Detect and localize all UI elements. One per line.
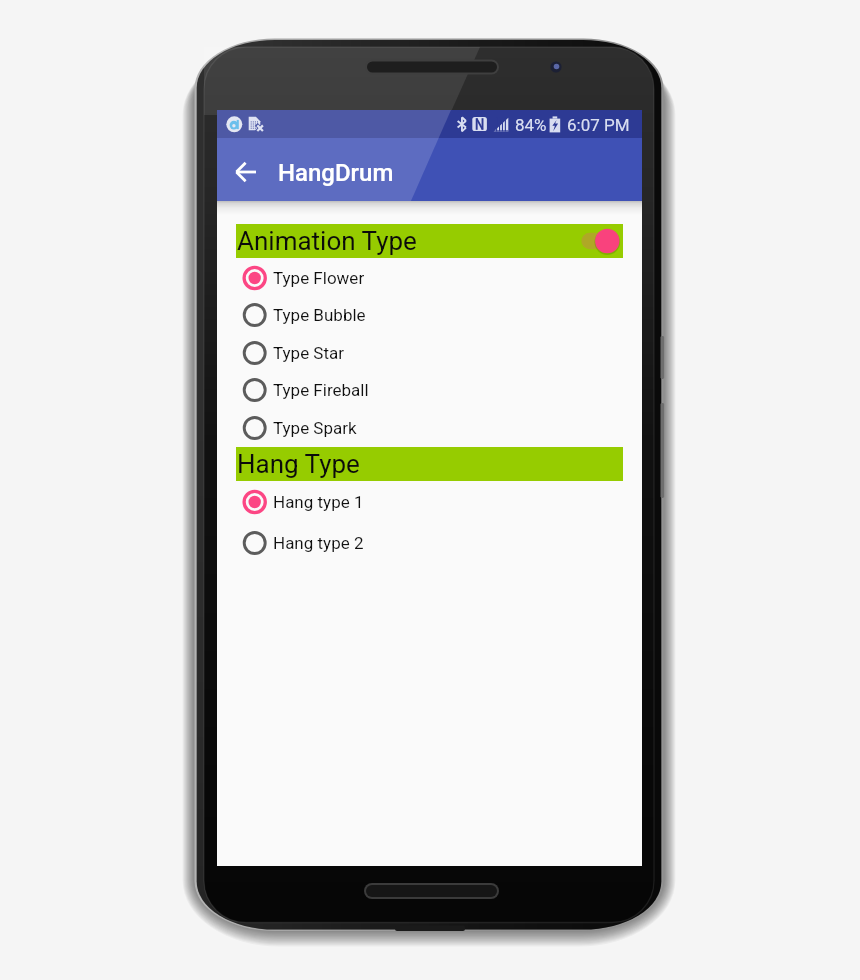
staticText: Hang Type (237, 449, 360, 479)
staticText: Animation Type (237, 226, 417, 256)
button[interactable]: Hang type 2 (217, 524, 642, 561)
staticText: Type Flower (273, 268, 365, 288)
staticText: Type Fireball (273, 380, 369, 400)
button[interactable]: Type Flower (217, 259, 642, 296)
button[interactable]: Type Star (217, 334, 642, 371)
staticText: Type Spark (273, 418, 357, 438)
staticText: Hang type 2 (273, 533, 364, 553)
button[interactable]: Type Bubble (217, 296, 642, 333)
staticText: HangDrum (278, 159, 394, 187)
button[interactable]: Type Spark (217, 409, 642, 446)
staticText: 84% (515, 115, 547, 135)
staticText: Type Bubble (273, 305, 366, 325)
staticText: Type Star (273, 343, 345, 363)
button[interactable]: Hang Type (236, 447, 623, 481)
button[interactable]: Navigate up (223, 150, 267, 194)
button[interactable]: Type Fireball (217, 371, 642, 408)
staticText: Hang type 1 (273, 492, 364, 512)
button[interactable]: Toggle animation type (575, 224, 623, 258)
staticText: 6:07 PM (567, 115, 630, 135)
button[interactable]: Animation Type (236, 224, 623, 258)
button[interactable]: Hang type 1 (217, 483, 642, 520)
